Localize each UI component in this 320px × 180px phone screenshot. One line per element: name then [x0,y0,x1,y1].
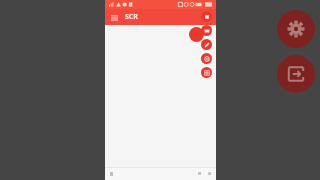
button[interactable]: Draw [201,39,212,50]
button[interactable]: Stop recording [201,11,212,22]
button[interactable]: Exit [277,55,315,93]
button[interactable]: Home [195,169,204,178]
button[interactable]: Recent apps [205,169,214,178]
staticText: SCR [125,12,138,22]
button[interactable]: Back [107,169,116,178]
button[interactable]: Settings [277,10,315,48]
button[interactable]: Open navigation menu [108,11,120,23]
button[interactable]: Take screenshot [201,53,212,64]
button[interactable]: Show grid [201,67,212,78]
button[interactable]: Record video [201,25,212,36]
button[interactable]: Speed dial [189,27,204,42]
